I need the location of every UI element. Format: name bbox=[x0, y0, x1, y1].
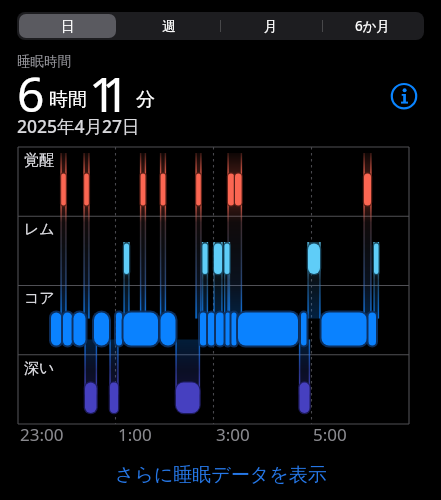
staticText: コア bbox=[24, 289, 55, 308]
button[interactable]: 月 bbox=[220, 12, 322, 40]
staticText: 3:00 bbox=[216, 423, 250, 446]
staticText: 1 bbox=[89, 61, 117, 126]
staticText: 時間 bbox=[49, 88, 87, 112]
staticText: 月 bbox=[264, 18, 278, 35]
button[interactable]: 日 bbox=[19, 14, 116, 38]
button[interactable]: さらに睡眠データを表示 bbox=[107, 460, 335, 490]
button[interactable]: 6か月 bbox=[322, 12, 424, 40]
staticText: 睡眠時間 bbox=[17, 53, 71, 70]
staticText: さらに睡眠データを表示 bbox=[115, 463, 327, 487]
staticText: 1:00 bbox=[118, 423, 152, 446]
staticText: 6か月 bbox=[355, 17, 391, 35]
staticText: 23:00 bbox=[20, 423, 64, 446]
staticText: 分 bbox=[136, 88, 155, 112]
staticText: 日 bbox=[61, 18, 75, 35]
button[interactable] bbox=[390, 82, 418, 110]
staticText: 深い bbox=[24, 359, 55, 378]
staticText: 1 bbox=[102, 61, 130, 126]
staticText: レム bbox=[24, 220, 55, 239]
staticText: 覚醒 bbox=[24, 151, 54, 170]
staticText: 週 bbox=[162, 18, 176, 35]
button[interactable]: 週 bbox=[118, 12, 220, 40]
staticText: 5:00 bbox=[313, 423, 347, 446]
staticText: 2025年4月27日 bbox=[17, 114, 140, 138]
staticText: 6 bbox=[17, 61, 45, 126]
